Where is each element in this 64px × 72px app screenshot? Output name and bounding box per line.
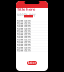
button[interactable]: Row item (16, 22, 48, 25)
staticText: Row item (17, 35, 30, 39)
button[interactable]: Action (27, 61, 37, 65)
staticText: Row item (17, 27, 30, 30)
button[interactable]: Row item (16, 30, 48, 33)
button[interactable]: Row item (16, 41, 48, 44)
button[interactable]: Row item (16, 19, 48, 22)
staticText: Row item (17, 43, 30, 47)
staticText: Row item (17, 49, 30, 52)
staticText: subtitle copy (17, 13, 35, 16)
button[interactable]: Row item (16, 25, 48, 27)
button[interactable]: Row item (16, 46, 48, 49)
staticText: Row item (17, 22, 30, 25)
staticText: Row item (17, 19, 30, 22)
staticText: Title here (17, 7, 35, 12)
staticText: Action (27, 61, 36, 65)
button[interactable]: Row item (16, 49, 48, 52)
button[interactable]: Row item (16, 33, 48, 36)
staticText: Row item (17, 30, 30, 33)
staticText: Row item (17, 46, 30, 49)
staticText: Row item (17, 32, 30, 36)
button[interactable]: Row item (16, 36, 48, 38)
staticText: Row item (17, 40, 30, 44)
button[interactable]: Row item (16, 38, 48, 41)
staticText: Row item (17, 24, 30, 28)
button[interactable]: Row item (16, 27, 48, 30)
button[interactable]: Row item (16, 44, 48, 46)
staticText: Row item (17, 38, 30, 41)
